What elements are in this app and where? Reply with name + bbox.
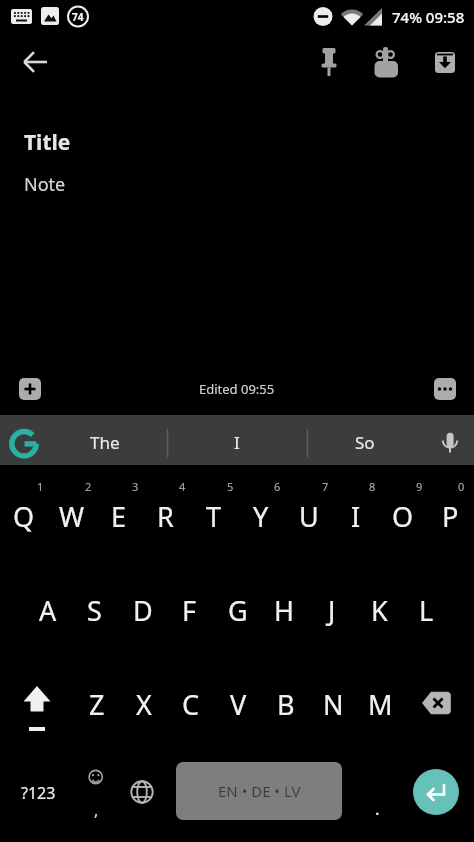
staticText: 8 xyxy=(369,479,376,494)
staticText: H xyxy=(274,592,295,629)
button[interactable] xyxy=(427,371,463,407)
button[interactable]: T xyxy=(190,473,237,559)
button[interactable] xyxy=(10,657,64,751)
staticText: 2 xyxy=(85,479,92,494)
staticText: Q xyxy=(13,498,35,535)
staticText: N xyxy=(323,686,344,723)
staticText: D xyxy=(133,592,153,629)
staticText: V xyxy=(230,686,247,723)
staticText: O xyxy=(392,498,414,535)
button[interactable]: X xyxy=(120,657,167,751)
button[interactable]: I xyxy=(182,417,292,467)
button[interactable]: E xyxy=(95,473,142,559)
staticText: Z xyxy=(89,686,105,723)
staticText: U xyxy=(299,498,319,535)
button[interactable]: W xyxy=(48,473,95,559)
button[interactable]: N xyxy=(310,657,357,751)
button[interactable]: Y xyxy=(237,473,284,559)
button[interactable] xyxy=(16,44,54,82)
staticText: X xyxy=(136,686,152,723)
button[interactable] xyxy=(422,44,460,82)
staticText: ?123 xyxy=(21,782,56,804)
staticText: P xyxy=(442,498,459,535)
staticText: , xyxy=(94,799,99,821)
button[interactable] xyxy=(365,44,403,82)
staticText: K xyxy=(371,592,388,629)
staticText: 4 xyxy=(179,479,186,494)
staticText: Edited 09:55 xyxy=(199,380,275,398)
button[interactable]: K xyxy=(356,563,403,657)
staticText: 1 xyxy=(37,479,44,494)
button[interactable]: G xyxy=(214,563,261,657)
button[interactable] xyxy=(410,657,464,751)
staticText: L xyxy=(419,592,434,629)
button[interactable] xyxy=(72,751,120,831)
button[interactable]: R xyxy=(142,473,189,559)
staticText: C xyxy=(182,686,200,723)
staticText: 9 xyxy=(416,479,423,494)
button[interactable]: B xyxy=(262,657,309,751)
staticText: 3 xyxy=(132,479,139,494)
staticText: . xyxy=(375,797,380,820)
staticText: 74% 09:58 xyxy=(392,7,465,27)
staticText: W xyxy=(59,498,85,535)
button[interactable]: J xyxy=(308,563,355,657)
staticText: Note xyxy=(24,172,66,197)
button[interactable] xyxy=(12,371,48,407)
button[interactable]: I xyxy=(332,473,379,559)
staticText: B xyxy=(277,686,295,723)
staticText: S xyxy=(87,592,102,629)
button[interactable]: O xyxy=(379,473,426,559)
button[interactable]: L xyxy=(403,563,450,657)
button[interactable] xyxy=(428,421,472,463)
button[interactable]: So xyxy=(310,417,420,467)
staticText: 0 xyxy=(458,479,465,494)
button[interactable]: V xyxy=(215,657,262,751)
button[interactable]: A xyxy=(24,563,71,657)
staticText: M xyxy=(368,686,393,723)
staticText: Title xyxy=(24,128,71,157)
staticText: G xyxy=(228,592,248,629)
staticText: I xyxy=(351,498,361,535)
staticText: J xyxy=(328,592,336,629)
staticText: T xyxy=(206,498,222,535)
staticText: So xyxy=(355,431,375,454)
button[interactable] xyxy=(413,769,459,815)
button[interactable] xyxy=(308,44,346,82)
staticText: I xyxy=(234,431,240,454)
staticText: EN • DE • LV xyxy=(218,781,301,801)
staticText: 7 xyxy=(322,479,329,494)
button[interactable]: Z xyxy=(73,657,120,751)
button[interactable]: P xyxy=(427,473,474,559)
button[interactable]: M xyxy=(357,657,404,751)
button[interactable]: H xyxy=(261,563,308,657)
staticText: 6 xyxy=(274,479,281,494)
staticText: Y xyxy=(253,498,269,535)
button[interactable]: The xyxy=(50,417,160,467)
button[interactable] xyxy=(118,762,166,820)
button[interactable]: EN • DE • LV xyxy=(176,762,342,820)
staticText: E xyxy=(111,498,127,535)
button[interactable]: F xyxy=(166,563,213,657)
staticText: R xyxy=(157,498,174,535)
button[interactable]: C xyxy=(167,657,214,751)
staticText: 5 xyxy=(227,479,234,494)
button[interactable]: ?123 xyxy=(8,764,68,822)
button[interactable]: D xyxy=(119,563,166,657)
button[interactable]: U xyxy=(285,473,332,559)
staticText: A xyxy=(39,592,57,629)
staticText: 74 xyxy=(72,10,84,24)
button[interactable]: S xyxy=(71,563,118,657)
staticText: F xyxy=(182,592,197,629)
button[interactable]: Q xyxy=(0,473,47,559)
staticText: The xyxy=(90,431,120,454)
